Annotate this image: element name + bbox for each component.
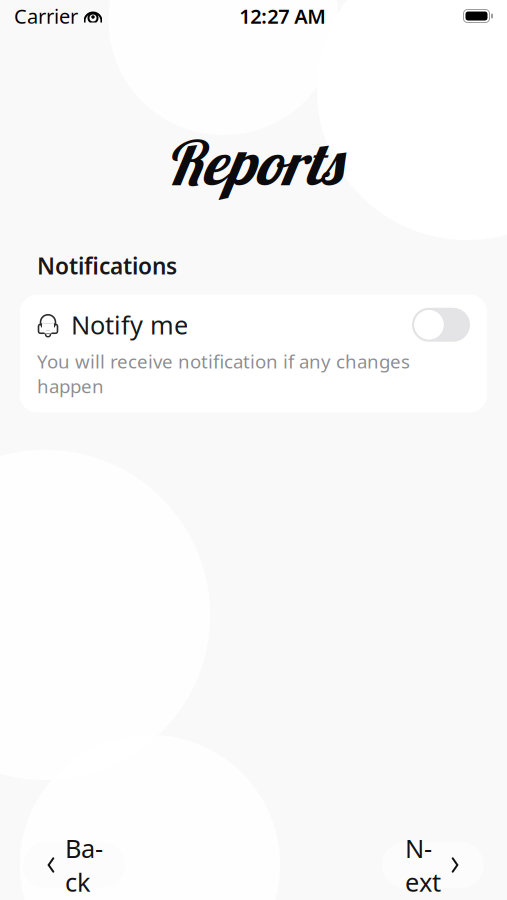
button[interactable]: Next [382, 842, 484, 888]
button[interactable]: Back [23, 842, 125, 888]
staticText: Notifications [37, 251, 177, 281]
staticText: Next [405, 831, 441, 899]
staticText: Back [65, 831, 103, 899]
button[interactable]: Notify me [412, 308, 470, 342]
staticText: 12:27 AM [239, 3, 326, 29]
staticText: You will receive notification if any cha… [37, 349, 410, 398]
staticText: Notify me [71, 308, 188, 341]
staticText: Carrier [14, 3, 78, 29]
staticText: Reports [166, 124, 341, 201]
